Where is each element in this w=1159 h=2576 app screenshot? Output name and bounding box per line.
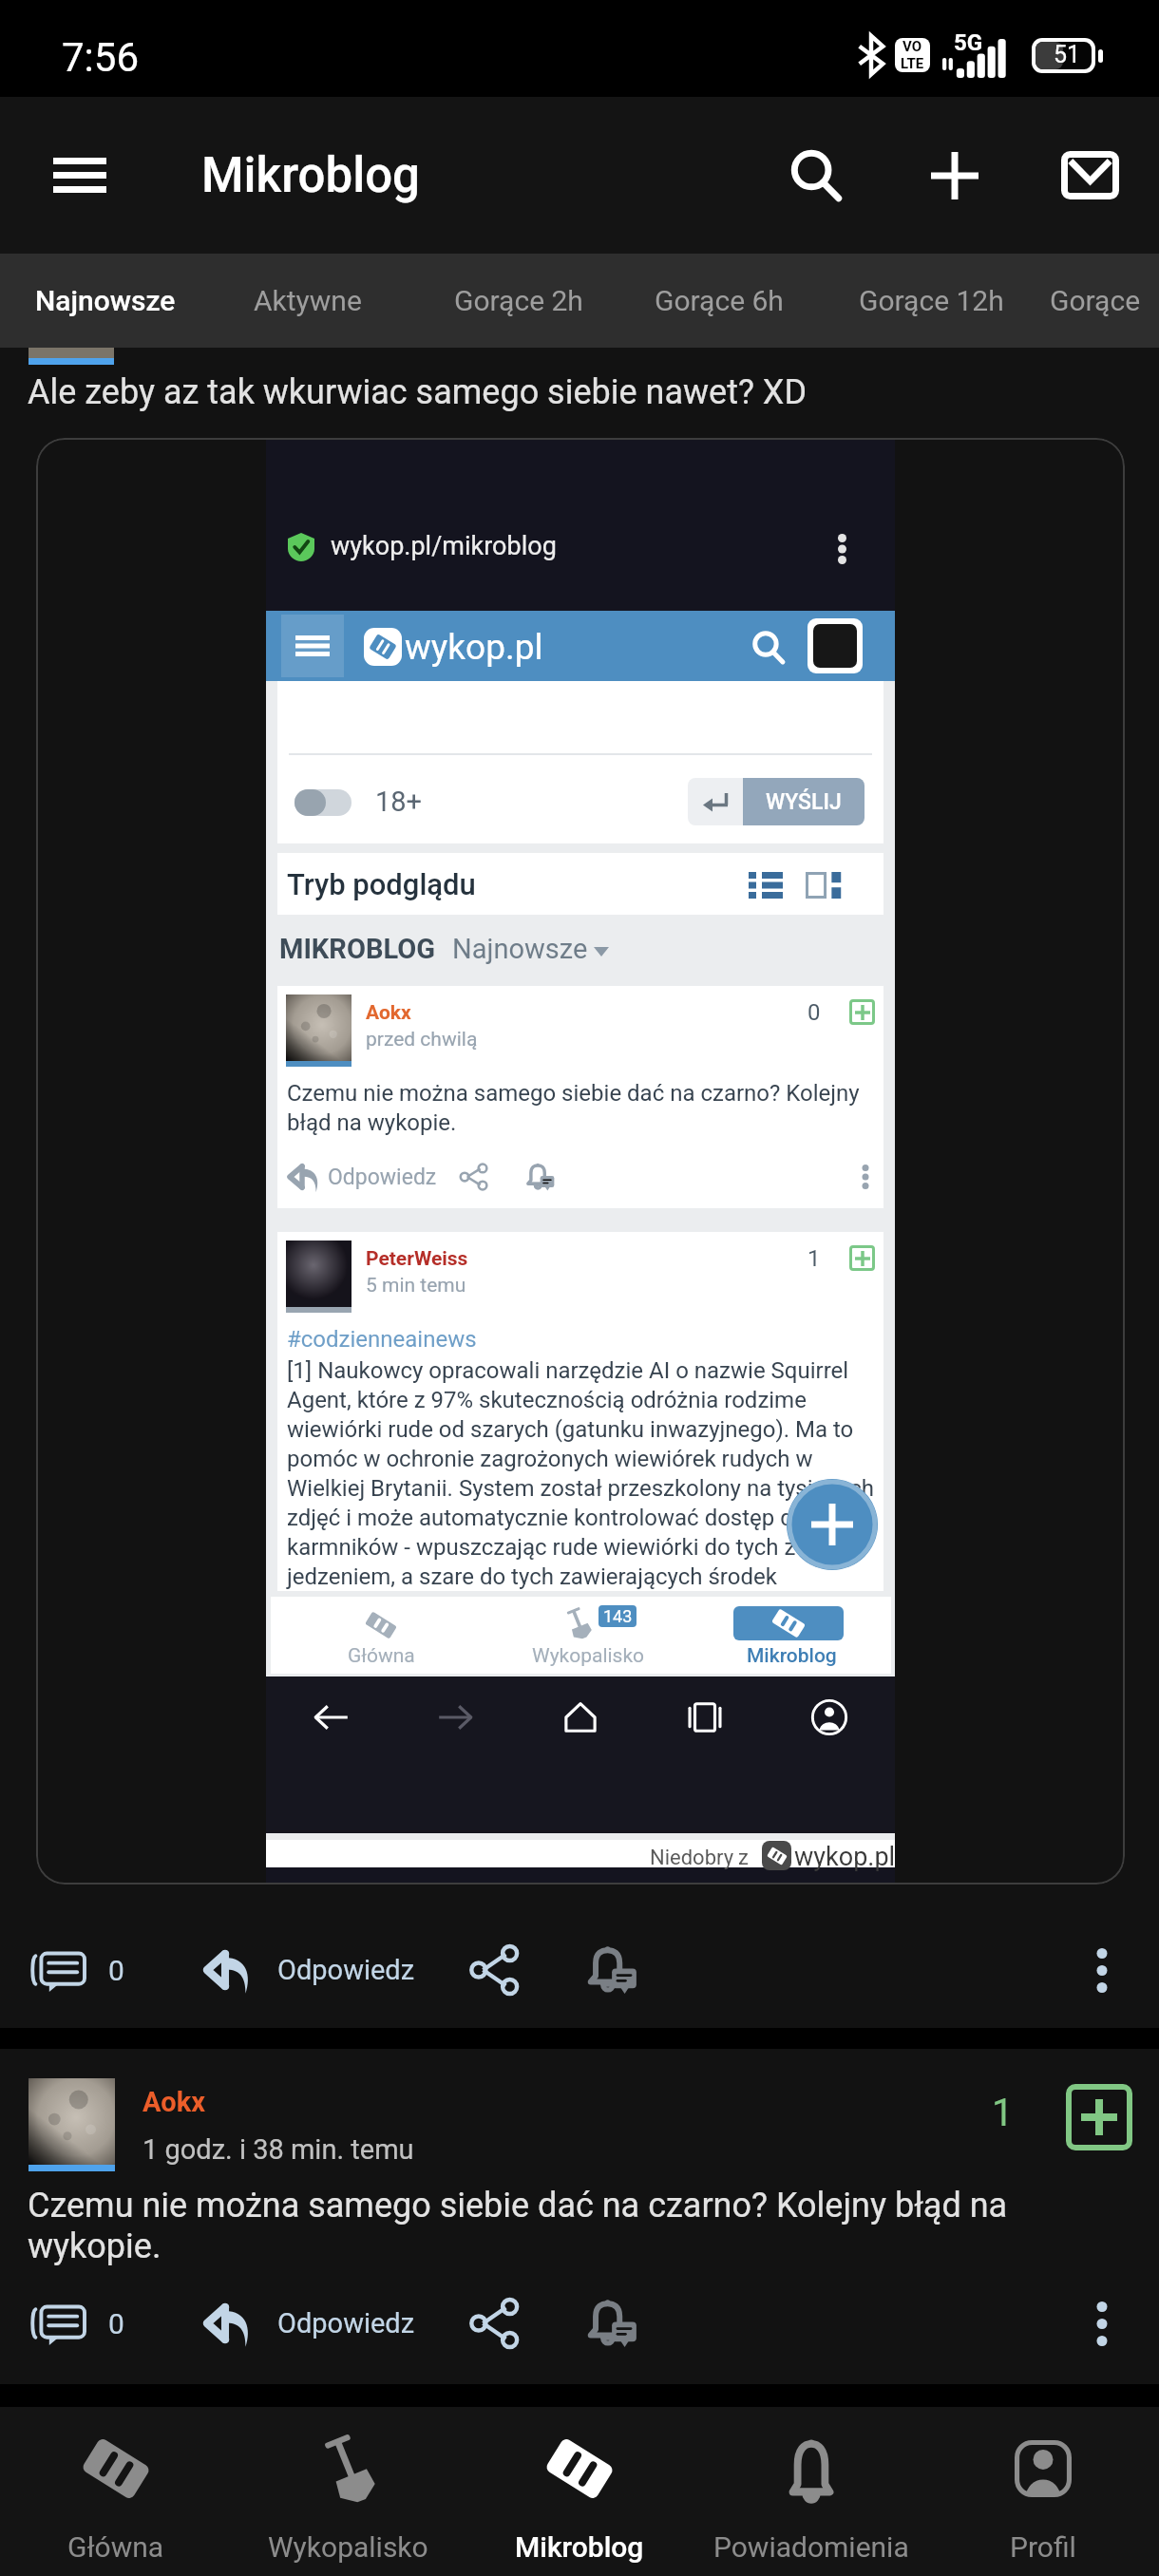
staticText: Profil: [1010, 2530, 1076, 2564]
staticText: Wykopalisko: [268, 2530, 428, 2564]
staticText: Czemu nie można samego siebie dać na cza…: [28, 2186, 1008, 2266]
staticText: jedzeniem, a szare do tych zawierających…: [287, 1563, 777, 1590]
button[interactable]: Share: [456, 2282, 534, 2365]
button[interactable]: More options: [1066, 1928, 1138, 2012]
staticText: zdjęć i może automatycznie kontrolować d…: [287, 1505, 807, 1531]
button[interactable]: Mikroblog: [464, 2407, 695, 2576]
button[interactable]: 0: [17, 1928, 138, 2012]
staticText: Wykopalisko: [532, 1644, 645, 1668]
staticText: Tryb podglądu: [287, 867, 476, 901]
button[interactable]: Gorące 6h: [618, 254, 820, 348]
button[interactable]: [483, 1597, 673, 1674]
button[interactable]: Add entry: [787, 1479, 878, 1570]
staticText: Najnowsze: [35, 284, 176, 317]
button[interactable]: Odpowiedz: [188, 2282, 428, 2365]
staticText: LTE: [901, 55, 924, 72]
staticText: pomóc w ochronie zagrożonych wiewiórek r…: [287, 1446, 813, 1472]
staticText: Wielkiej Brytanii. System został przeszk…: [287, 1475, 875, 1502]
button[interactable]: Upvote: [849, 999, 875, 1025]
staticText: Aokx: [142, 2086, 205, 2118]
button[interactable]: Share: [456, 1928, 534, 2012]
staticText: Ale zeby az tak wkurwiac samego siebie n…: [28, 372, 807, 412]
button[interactable]: Gorące 12h: [823, 254, 1039, 348]
button[interactable]: Upvote: [1066, 2084, 1132, 2150]
staticText: #codzienneainews: [287, 1326, 477, 1353]
staticText: 0: [807, 999, 821, 1026]
staticText: wykop.pl: [794, 1842, 896, 1872]
staticText: Gorące 12h: [859, 284, 1004, 317]
button[interactable]: Notifications for this entry: [572, 2282, 650, 2365]
button[interactable]: [279, 1597, 469, 1674]
staticText: z: [738, 1846, 749, 1870]
button[interactable]: Attached screenshot: [36, 438, 1125, 1885]
staticText: Gorące 6h: [655, 284, 784, 317]
staticText: Agent, które z 97% skutecznością odróżni…: [287, 1387, 807, 1413]
button[interactable]: Messages: [1023, 97, 1156, 254]
staticText: MIKROBLOG: [279, 933, 435, 965]
staticText: Mikroblog: [747, 1644, 837, 1668]
staticText: wiewiórki rude od szarych (gatunku inwaz…: [287, 1416, 854, 1443]
button[interactable]: Powiadomienia: [695, 2407, 927, 2576]
staticText: 18+: [375, 786, 423, 818]
staticText: wykop.pl/mikroblog: [331, 531, 557, 561]
button[interactable]: Wykopalisko: [232, 2407, 464, 2576]
button[interactable]: [690, 1597, 880, 1674]
staticText: 51: [1054, 41, 1081, 68]
button[interactable]: Odpowiedz: [188, 1928, 428, 2012]
staticText: błąd na wykopie.: [287, 1109, 457, 1136]
button[interactable]: Gorące: [1034, 254, 1157, 348]
staticText: Odpowiedz: [277, 1954, 415, 1986]
button[interactable]: New entry: [888, 97, 1021, 254]
button[interactable]: Aktywne: [222, 254, 393, 348]
staticText: Gorące 2h: [454, 284, 583, 317]
staticText: 1: [807, 1245, 821, 1272]
button[interactable]: Główna: [0, 2407, 232, 2576]
staticText: 0: [108, 2307, 124, 2340]
staticText: Główna: [67, 2530, 164, 2564]
staticText: Najnowsze: [452, 933, 588, 965]
staticText: Gorące: [1050, 284, 1141, 317]
button[interactable]: More options: [1066, 2282, 1138, 2365]
button[interactable]: Search: [750, 97, 883, 254]
button[interactable]: Profil: [927, 2407, 1159, 2576]
staticText: 5 min temu: [366, 1274, 466, 1297]
staticText: Aktywne: [254, 284, 362, 317]
staticText: Niedobry: [650, 1846, 734, 1870]
staticText: Powiadomienia: [713, 2530, 909, 2564]
staticText: 1: [992, 2091, 1014, 2135]
staticText: PeterWeiss: [366, 1247, 468, 1271]
staticText: Mikroblog: [201, 147, 421, 204]
staticText: 5G: [954, 29, 983, 56]
staticText: wykop.pl: [405, 627, 543, 668]
staticText: Mikroblog: [515, 2530, 644, 2564]
staticText: WYŚLIJ: [766, 789, 842, 815]
button[interactable]: 0: [17, 2282, 138, 2365]
staticText: Główna: [348, 1644, 415, 1668]
staticText: [1] Naukowcy opracowali narzędzie AI o n…: [287, 1357, 849, 1384]
staticText: 7:56: [62, 34, 139, 81]
staticText: przed chwilą: [366, 1028, 478, 1051]
staticText: Czemu nie można samego siebie dać na cza…: [287, 1080, 860, 1107]
staticText: Odpowiedz: [328, 1165, 437, 1190]
staticText: VO: [902, 38, 922, 55]
staticText: 0: [108, 1954, 124, 1987]
staticText: Odpowiedz: [277, 2307, 415, 2339]
button[interactable]: Upvote: [849, 1245, 875, 1271]
button[interactable]: Gorące 2h: [418, 254, 619, 348]
button[interactable]: Open navigation menu: [13, 97, 146, 254]
staticText: karmników - wpuszczając rude wiewiórki d…: [287, 1534, 796, 1561]
button[interactable]: Najnowsze: [5, 254, 206, 348]
staticText: Aokx: [366, 1001, 411, 1025]
staticText: 143: [603, 1606, 633, 1626]
staticText: 1 godz. i 38 min. temu: [142, 2133, 414, 2166]
button[interactable]: Notifications for this entry: [572, 1928, 650, 2012]
